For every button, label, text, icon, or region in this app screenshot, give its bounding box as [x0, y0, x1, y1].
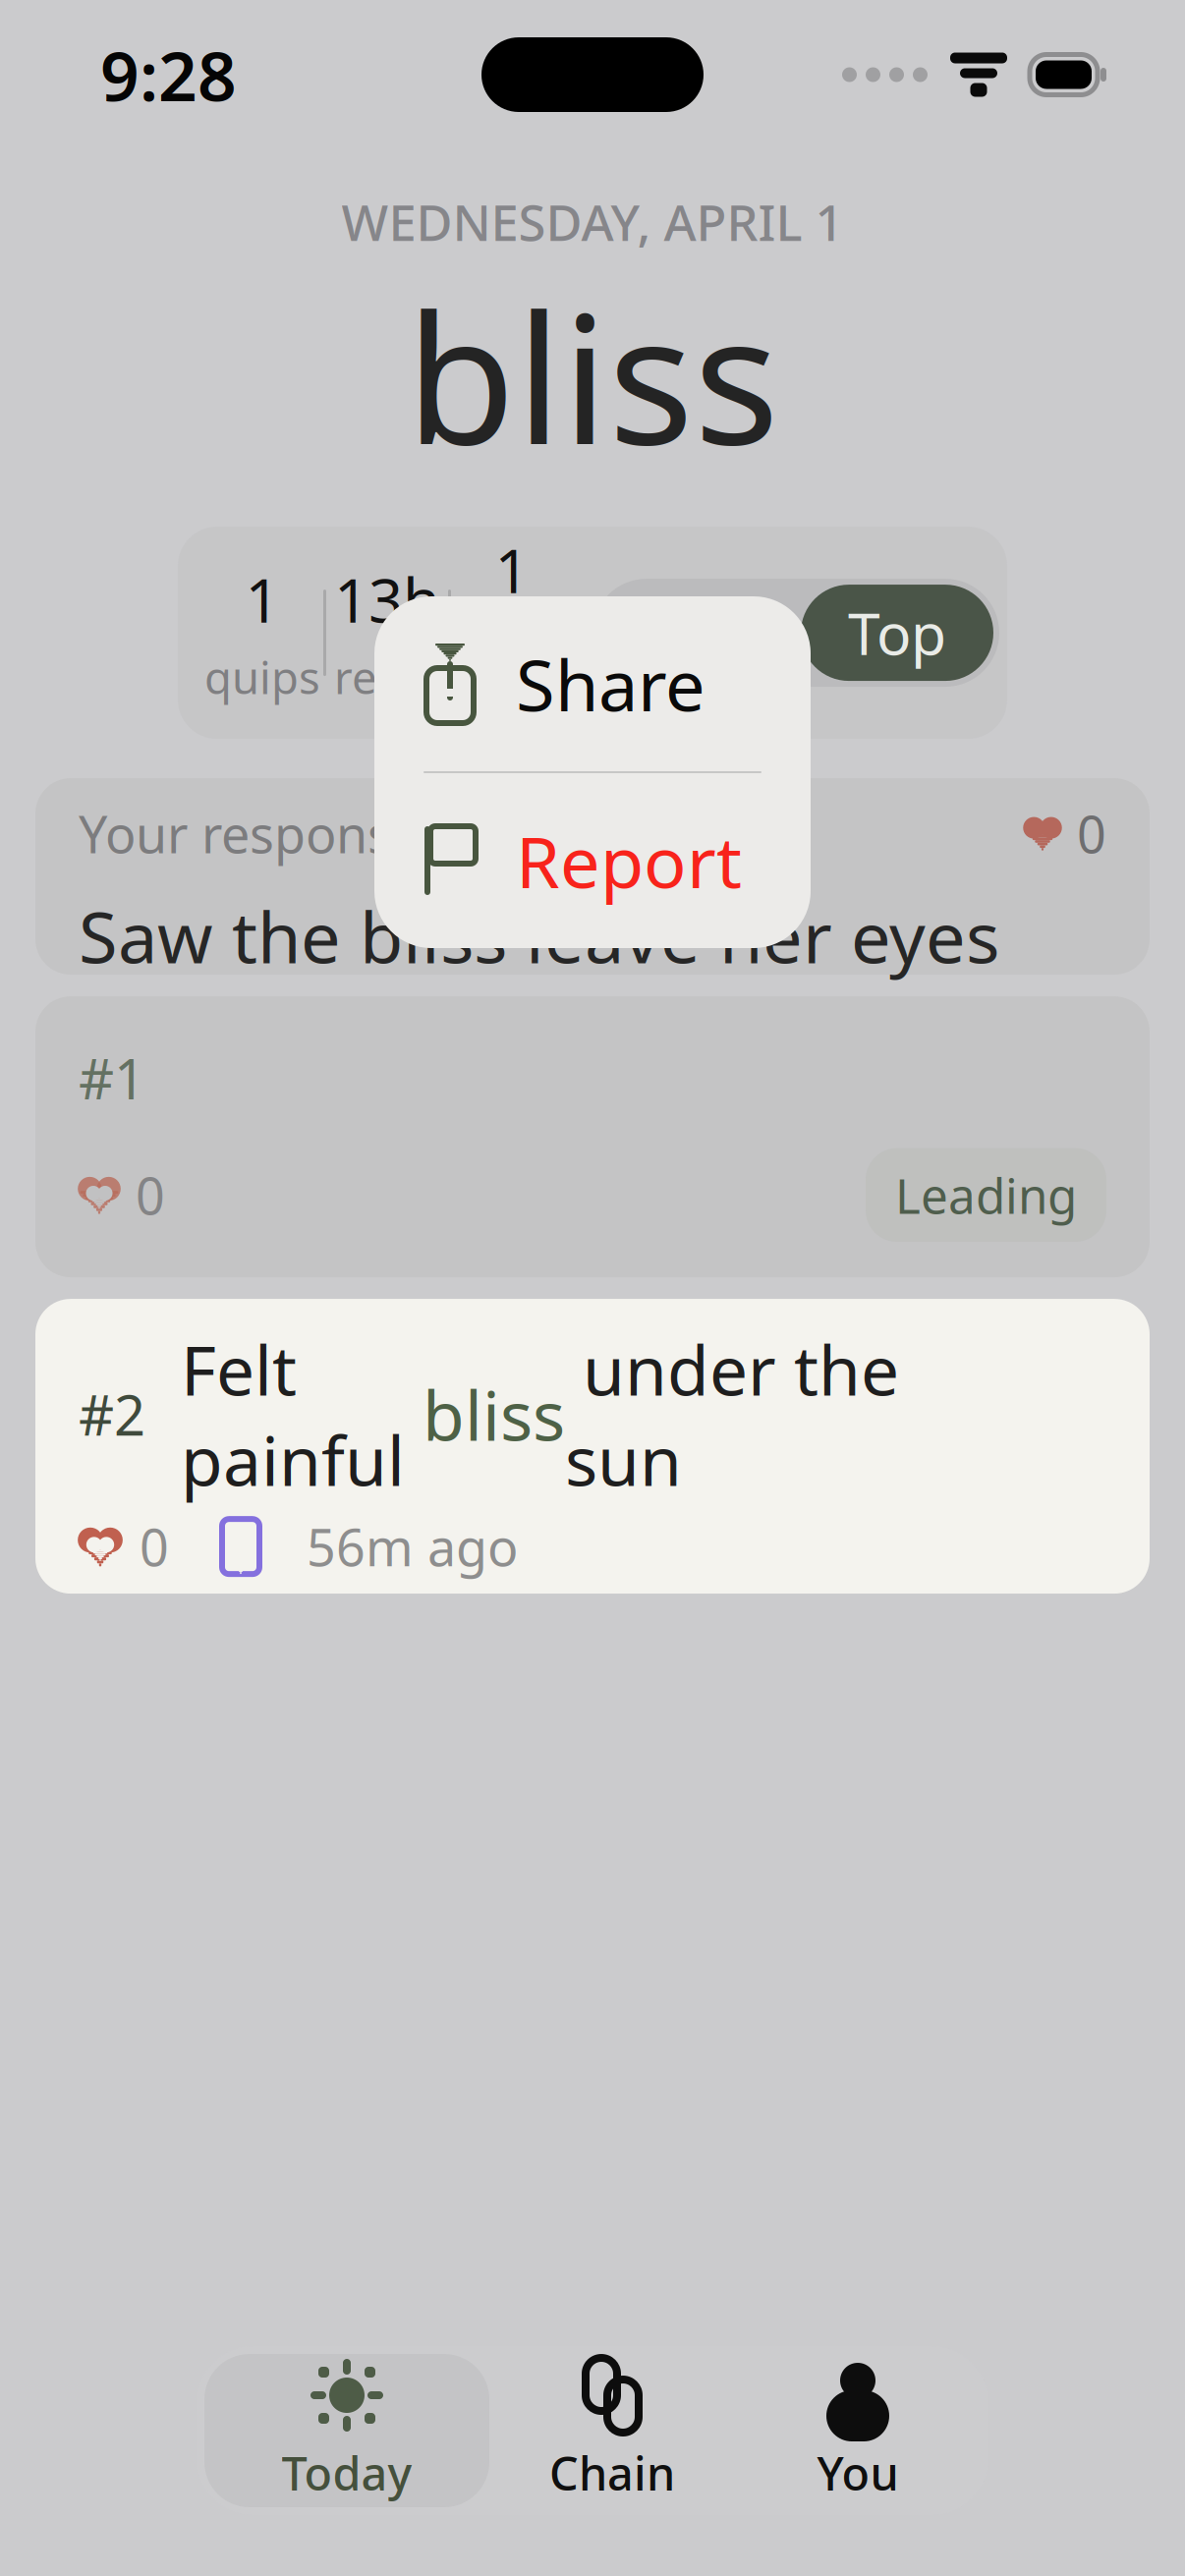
button[interactable]: #1 — [35, 996, 1150, 1277]
staticText: under the sun — [565, 1324, 899, 1505]
staticText: bliss — [423, 1369, 565, 1460]
staticText: 0 — [140, 1513, 169, 1580]
staticText: 13h — [334, 559, 440, 639]
staticText: streak — [452, 618, 572, 736]
button[interactable]: Your response — [35, 778, 1150, 975]
button[interactable]: Share — [374, 596, 811, 771]
staticText: Leading — [895, 1163, 1077, 1227]
staticText: 9:28 — [100, 29, 237, 120]
staticText: Chain — [549, 2442, 675, 2503]
button[interactable]: #2 — [35, 1299, 1150, 1594]
button[interactable]: Report — [374, 773, 811, 948]
staticText: 0 — [1077, 800, 1106, 867]
staticText: Saw the bliss leave her eyes — [79, 889, 999, 983]
button[interactable]: You — [735, 2354, 981, 2507]
staticText: WEDNESDAY, APRIL 1 — [341, 189, 844, 255]
staticText: 1 — [245, 559, 280, 639]
button[interactable]: Top — [801, 585, 993, 681]
staticText: Your response — [79, 800, 421, 867]
staticText: Felt painful — [181, 1324, 423, 1505]
staticText: 56m ago — [307, 1513, 518, 1580]
staticText: reset — [334, 647, 440, 706]
staticText: Report — [516, 814, 742, 908]
staticText: bliss — [406, 257, 779, 493]
staticText: quips — [204, 647, 320, 706]
staticText: Today — [282, 2442, 412, 2503]
staticText: 1 — [495, 530, 529, 610]
button[interactable]: Chain — [489, 2354, 735, 2507]
button[interactable]: Swipe — [598, 585, 801, 681]
button[interactable]: Today — [204, 2354, 489, 2507]
staticText: Top — [848, 594, 946, 671]
staticText: #1 — [79, 1042, 145, 1115]
staticText: Swipe — [620, 594, 779, 671]
staticText: 0 — [136, 1161, 165, 1229]
staticText: Share — [516, 637, 705, 731]
staticText: You — [817, 2442, 899, 2503]
staticText: #2 — [79, 1378, 145, 1451]
